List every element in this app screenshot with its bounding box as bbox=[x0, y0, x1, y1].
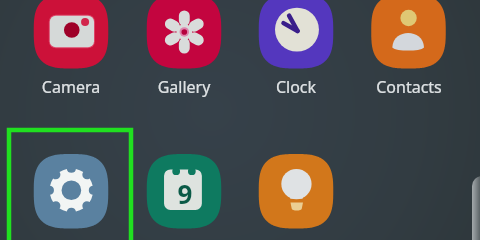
button[interactable]: Clock bbox=[241, 76, 351, 98]
staticText: Contacts bbox=[354, 76, 464, 98]
button[interactable]: Gallery bbox=[129, 76, 239, 98]
button[interactable]: Camera bbox=[16, 76, 126, 98]
staticText: Calendar bbox=[129, 236, 239, 240]
staticText: Clock bbox=[241, 76, 351, 98]
staticText: Gallery bbox=[129, 76, 239, 98]
staticText: 9 bbox=[155, 176, 215, 208]
button[interactable]: Contacts bbox=[354, 76, 464, 98]
button[interactable]: Calendar bbox=[129, 236, 239, 240]
staticText: Camera bbox=[16, 76, 126, 98]
